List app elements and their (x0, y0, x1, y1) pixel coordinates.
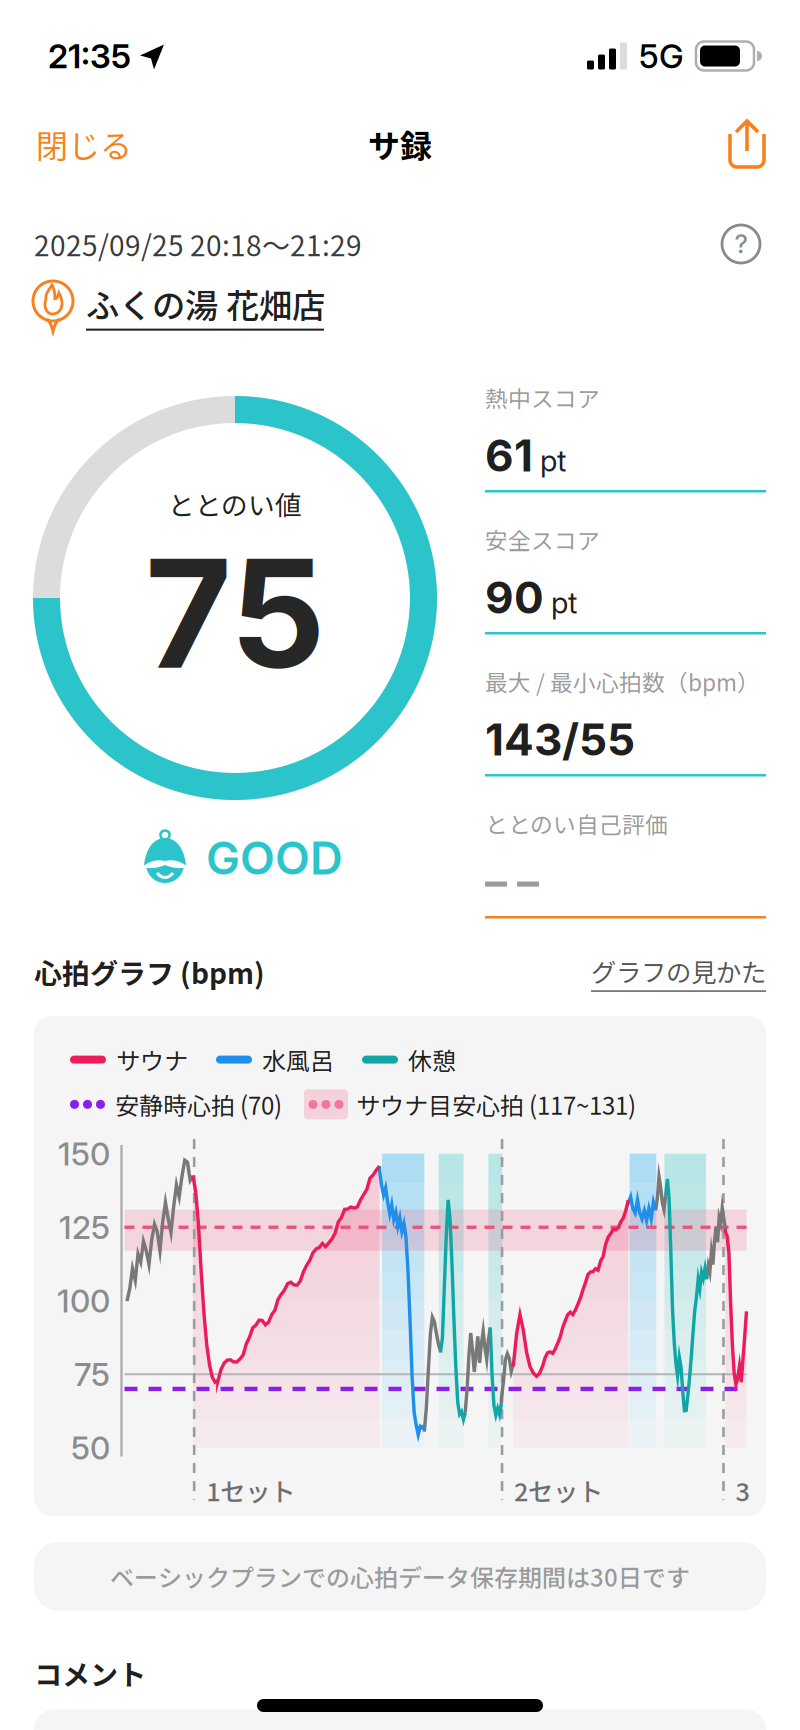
staticText: コメント (34, 1653, 146, 1693)
staticText: 143/55 (485, 713, 635, 766)
staticText: 安全スコア (485, 523, 600, 556)
staticText: サウナ目安心拍 (117~131) (356, 1087, 636, 1122)
staticText: 3 (735, 1472, 749, 1508)
staticText: サ録 (368, 121, 432, 167)
staticText: ととのい値 (168, 484, 302, 523)
button[interactable]: 共有 (716, 113, 778, 175)
button[interactable]: グラフの見かた (591, 952, 766, 992)
staticText: 61 (485, 429, 533, 482)
staticText: 90 (485, 571, 544, 624)
staticText: ととのい自己評価 (485, 807, 668, 840)
button[interactable]: ヘルプ (716, 219, 766, 269)
staticText: 150 (58, 1134, 110, 1173)
staticText: サウナ (116, 1042, 188, 1077)
staticText: 熱中スコア (485, 381, 600, 414)
staticText: 最大 / 最小心拍数（bpm） (485, 665, 760, 698)
staticText: 水風呂 (262, 1042, 334, 1077)
staticText: 心拍グラフ (bpm) (34, 951, 265, 992)
staticText: 21:35 (48, 36, 131, 76)
staticText: 1セット (206, 1472, 295, 1508)
button[interactable]: 閉じる (22, 111, 146, 177)
staticText: 75 (74, 1355, 110, 1394)
staticText: 2025/09/25 20:18〜21:29 (34, 224, 362, 264)
staticText: – – (485, 855, 539, 908)
staticText: 安静時心拍 (70) (115, 1087, 282, 1122)
staticText: ? (734, 229, 747, 259)
staticText: GOOD (206, 831, 343, 885)
staticText: pt (540, 443, 566, 478)
staticText: 閉じる (36, 121, 132, 167)
staticText: 50 (71, 1428, 110, 1467)
staticText: グラフの見かた (591, 952, 766, 989)
button[interactable]: ふくの湯 花畑店 (0, 269, 800, 333)
staticText: 2セット (514, 1472, 603, 1508)
staticText: 125 (59, 1208, 110, 1247)
staticText: 100 (57, 1281, 110, 1320)
staticText: 75 (145, 523, 325, 704)
staticText: ふくの湯 花畑店 (86, 279, 325, 328)
staticText: 5G (639, 36, 684, 76)
staticText: 休憩 (408, 1042, 456, 1077)
staticText: pt (551, 585, 577, 620)
staticText: ベーシックプランでの心拍データ保存期間は30日です (110, 1559, 690, 1594)
